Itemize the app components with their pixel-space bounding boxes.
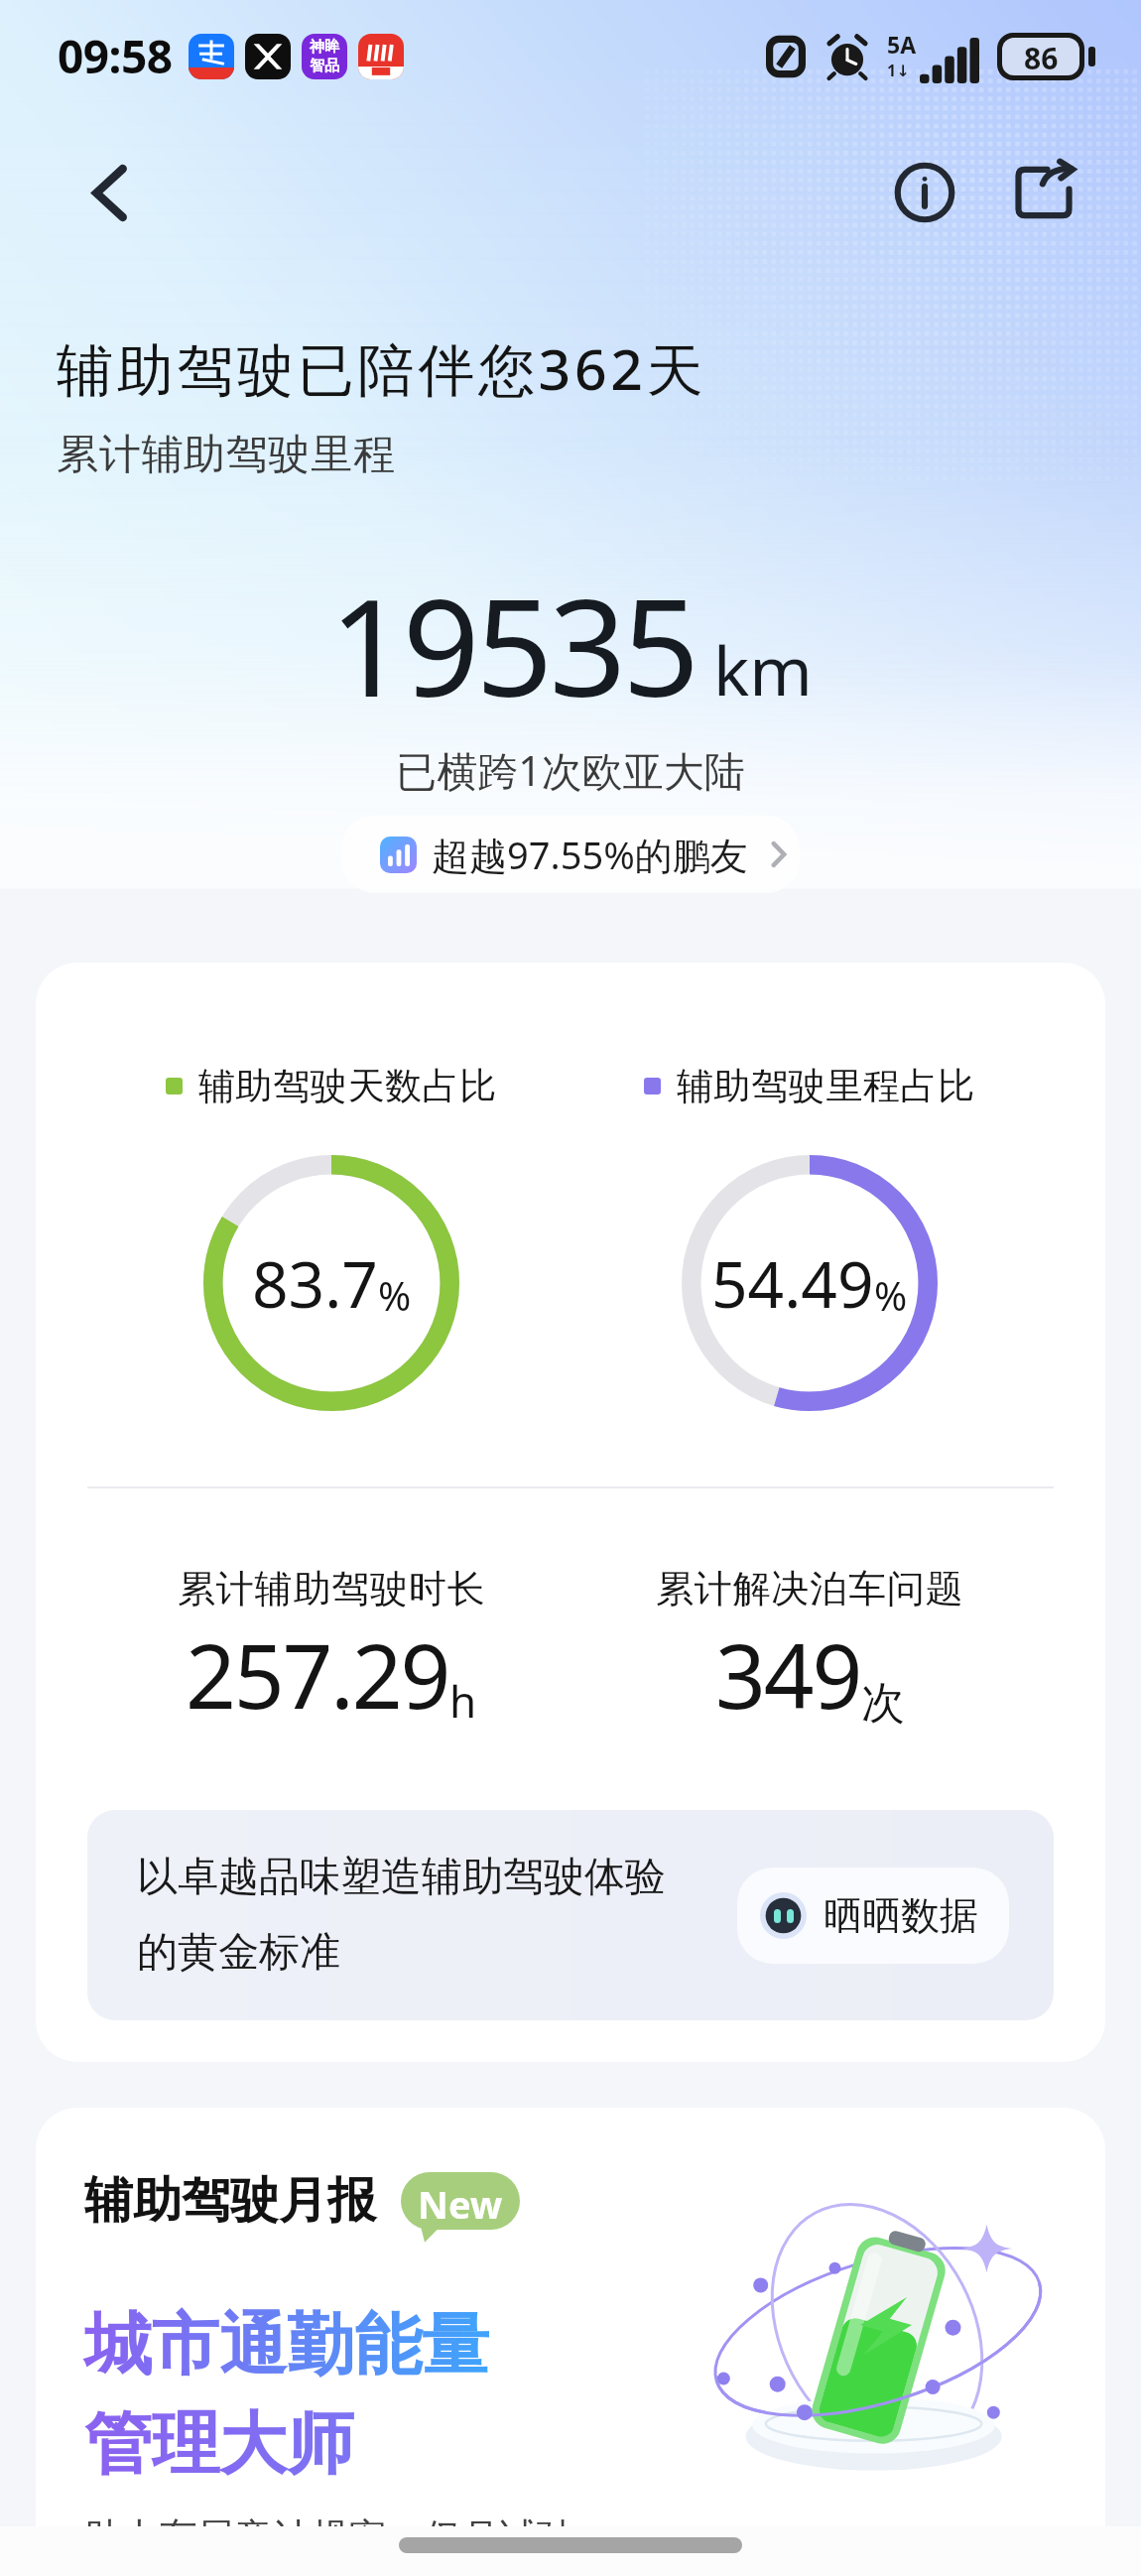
staticText: 83.7 [252, 1240, 378, 1327]
staticText: 管理大师 [84, 2402, 354, 2488]
staticText: 54.49 [711, 1240, 874, 1327]
button[interactable]: 辅助驾驶月报 [36, 2108, 1105, 2576]
button[interactable]: 超越97.55%的鹏友 [341, 816, 800, 893]
staticText: 智品 [310, 57, 339, 75]
staticText: 的黄金标准 [137, 1927, 340, 1979]
staticText: 以卓越品味塑造辅助驾驶体验 [137, 1852, 666, 1903]
staticText: 19535 [329, 553, 696, 736]
staticText: 辅助驾驶里程占比 [677, 1063, 975, 1109]
staticText: 86 [1024, 38, 1059, 75]
staticText: 城市通勤能量 [84, 2303, 489, 2388]
staticText: 349 [715, 1614, 861, 1735]
staticText: h [449, 1671, 477, 1731]
button[interactable]: Share [988, 137, 1099, 248]
staticText: 辅助驾驶天数占比 [198, 1063, 497, 1109]
staticText: 257.29 [186, 1614, 449, 1735]
staticText: 次 [861, 1676, 905, 1731]
staticText: 5A [887, 29, 917, 60]
staticText: 已横跨1次欧亚大陆 [0, 742, 1141, 798]
staticText: 辅助驾驶已陪伴您362天 [57, 329, 707, 407]
staticText: 超越97.55%的鹏友 [432, 829, 748, 880]
staticText: New [418, 2178, 503, 2230]
staticText: 累计解决泊车问题 [656, 1565, 964, 1612]
staticText: % [378, 1268, 412, 1322]
staticText: 累计辅助驾驶里程 [57, 429, 396, 481]
staticText: 辅助驾驶月报 [84, 2170, 376, 2232]
staticText: 累计辅助驾驶时长 [178, 1565, 486, 1612]
staticText: 09:58 [58, 25, 173, 87]
staticText: % [874, 1268, 908, 1322]
staticText: 晒晒数据 [824, 1891, 978, 1940]
button[interactable]: Info [869, 137, 980, 248]
staticText: 助力车尾竞计规密，仅月试驶 [84, 2513, 574, 2561]
staticText: 神眸 [310, 38, 339, 57]
button[interactable]: 晒晒数据 [737, 1868, 1009, 1964]
staticText: 1↓ [887, 60, 910, 81]
button[interactable]: Back [50, 133, 169, 252]
staticText: km [713, 623, 813, 715]
